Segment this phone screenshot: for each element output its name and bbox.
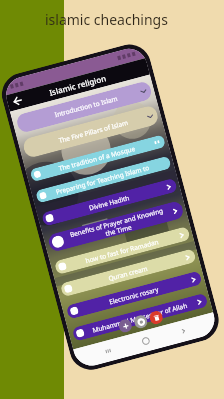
staticText: Muhammad Messenger of Allah — [85, 299, 194, 336]
button[interactable]: Delete — [148, 310, 164, 325]
staticText: islamic cheachings — [45, 10, 168, 29]
button[interactable]: how to fast for Ramadan — [54, 226, 191, 275]
staticText: Divine Hadith — [54, 184, 164, 221]
button[interactable]: Quran cream — [60, 248, 197, 297]
staticText: The Five Pillars of Islam — [41, 114, 145, 149]
button[interactable]: Muhammad Messenger of Allah — [72, 293, 209, 342]
button[interactable]: Home — [139, 334, 153, 348]
staticText: Introduction to Islam — [34, 88, 138, 124]
button[interactable]: Add — [117, 318, 133, 334]
button[interactable]: Introduction to Islam — [15, 80, 153, 134]
staticText: how to fast for Ramadan — [67, 232, 177, 270]
button[interactable]: Back — [10, 93, 26, 109]
staticText: Preparing for Teaching Islam to Muslims — [47, 161, 158, 198]
button[interactable]: Settings — [133, 314, 149, 330]
button[interactable]: The Five Pillars of Islam — [21, 104, 160, 159]
button[interactable]: Recents — [177, 324, 190, 338]
button[interactable]: Electronic rosary — [66, 270, 203, 319]
staticText: Electronic rosary — [79, 277, 189, 314]
staticText: Benefits of Prayer and Knowing the Time — [64, 204, 171, 248]
staticText: The tradition of a Mosque — [41, 140, 152, 177]
staticText: Quran cream — [73, 255, 183, 292]
button[interactable]: Divine Hadith — [41, 178, 178, 227]
button[interactable]: Preparing for Teaching Islam to Muslims — [35, 155, 172, 203]
staticText: Islamic religion — [48, 72, 108, 98]
button[interactable]: Benefits of Prayer and Knowing the Time — [47, 200, 185, 253]
button[interactable]: Back — [101, 344, 115, 358]
button[interactable]: The tradition of a Mosque — [29, 134, 166, 182]
